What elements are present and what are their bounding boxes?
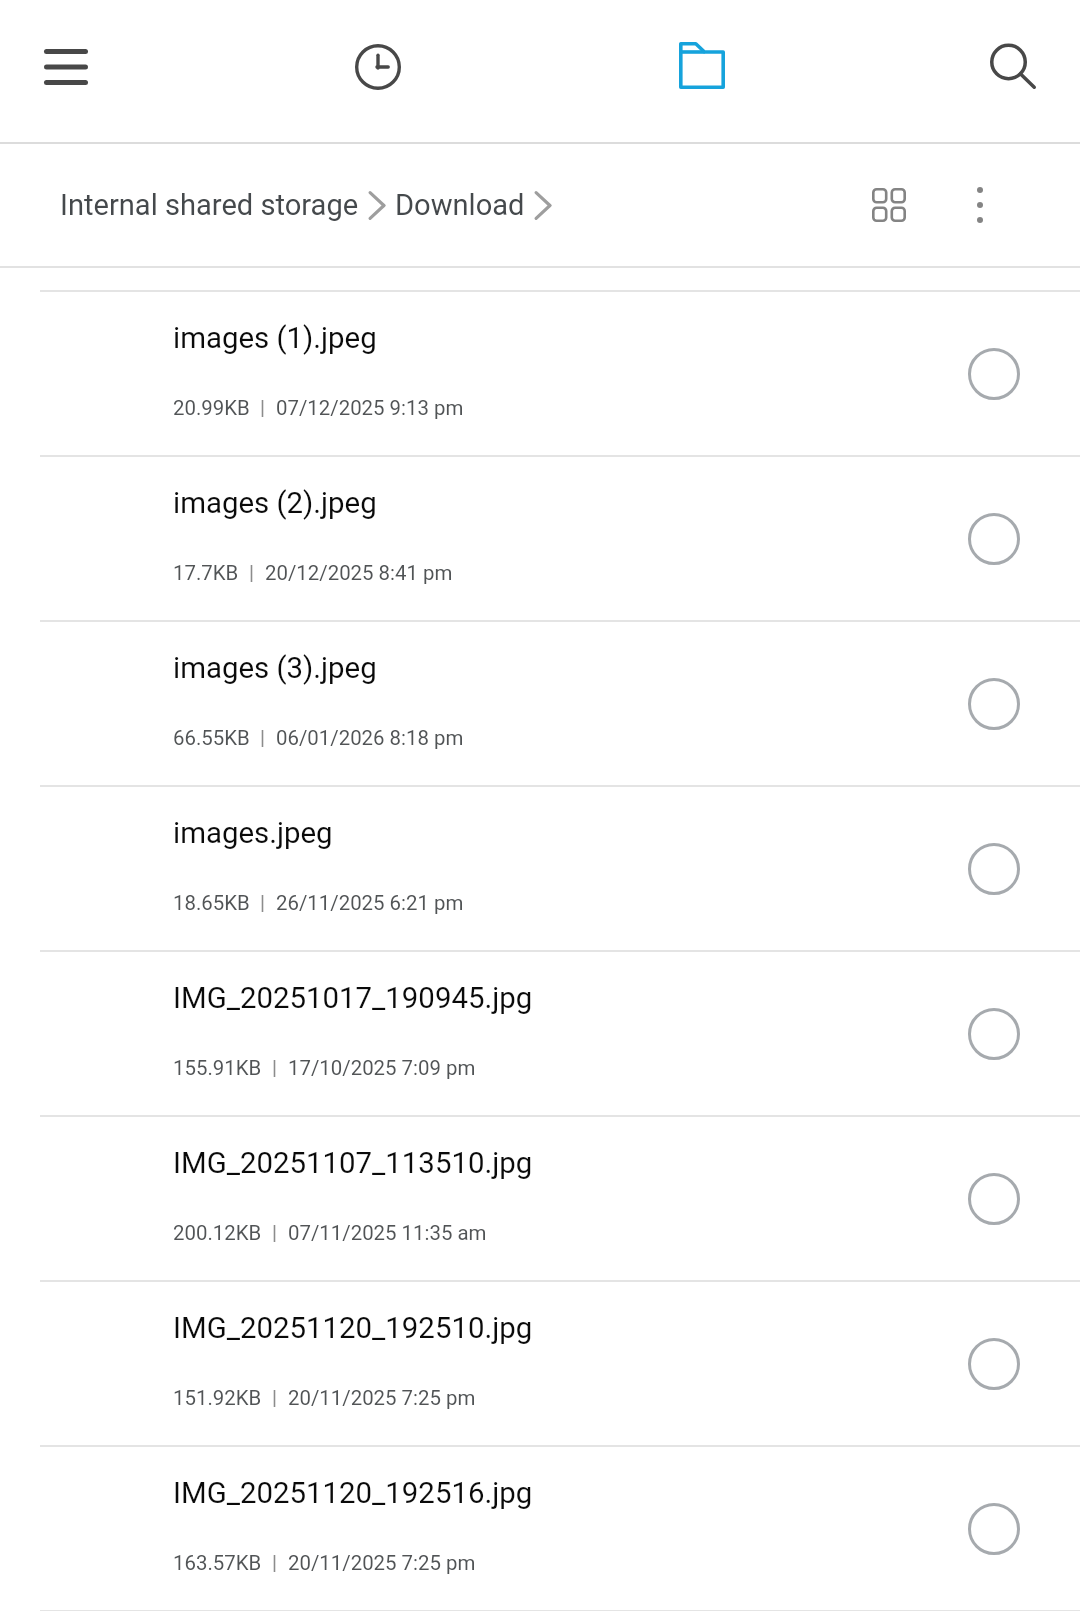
staticText: images.jpeg xyxy=(173,816,333,850)
staticText: 200.12KB xyxy=(173,1221,262,1245)
staticText: 07/12/2025 9:13 pm xyxy=(276,396,464,420)
staticText: IMG_20251017_190945.jpg xyxy=(173,981,533,1015)
staticText: Download xyxy=(395,188,525,222)
button[interactable]: Download xyxy=(395,144,525,266)
staticText: | xyxy=(262,1056,288,1080)
staticText: 20/11/2025 7:25 pm xyxy=(288,1386,476,1410)
staticText: 66.55KB xyxy=(173,726,250,750)
staticText: | xyxy=(262,1386,288,1410)
staticText: | xyxy=(262,1551,288,1575)
staticText: | xyxy=(250,726,276,750)
staticText: 06/01/2026 8:18 pm xyxy=(276,726,464,750)
staticText: 155.91KB xyxy=(173,1056,262,1080)
staticText: | xyxy=(262,1221,288,1245)
button[interactable]: Select IMG_20251017_190945.jpg xyxy=(940,952,1048,1115)
staticText: 17/10/2025 7:09 pm xyxy=(288,1056,476,1080)
button[interactable]: Grid view xyxy=(823,144,955,266)
button[interactable]: IMG_20251107_113510.jpg xyxy=(0,1115,1080,1280)
staticText: | xyxy=(239,561,265,585)
staticText: 26/11/2025 6:21 pm xyxy=(276,891,464,915)
button[interactable]: Menu xyxy=(0,0,138,138)
button[interactable]: More options xyxy=(914,144,1046,266)
button[interactable]: IMG_20251017_190945.jpg xyxy=(0,950,1080,1115)
staticText: | xyxy=(250,891,276,915)
staticText: 18.65KB xyxy=(173,891,250,915)
staticText: IMG_20251120_192510.jpg xyxy=(173,1311,533,1345)
button[interactable]: Select IMG_20251120_192510.jpg xyxy=(940,1282,1048,1445)
button[interactable]: images.jpeg xyxy=(0,785,1080,950)
staticText: 163.57KB xyxy=(173,1551,262,1575)
button[interactable]: Select images (1).jpeg xyxy=(940,292,1048,455)
staticText: images (1).jpeg xyxy=(173,321,377,355)
button[interactable]: Recent xyxy=(306,0,450,138)
button[interactable]: Select IMG_20251107_113510.jpg xyxy=(940,1117,1048,1280)
button[interactable]: Select images (3).jpeg xyxy=(940,622,1048,785)
button[interactable]: Select IMG_20251120_192516.jpg xyxy=(940,1447,1048,1610)
staticText: 07/11/2025 11:35 am xyxy=(288,1221,487,1245)
staticText: 20.99KB xyxy=(173,396,250,420)
staticText: 151.92KB xyxy=(173,1386,262,1410)
button[interactable]: Select images.jpeg xyxy=(940,787,1048,950)
staticText: IMG_20251107_113510.jpg xyxy=(173,1146,533,1180)
button[interactable]: images (3).jpeg xyxy=(0,620,1080,785)
button[interactable]: IMG_20251120_192510.jpg xyxy=(0,1280,1080,1445)
button[interactable]: images (1).jpeg xyxy=(0,290,1080,455)
staticText: 20/12/2025 8:41 pm xyxy=(265,561,453,585)
staticText: images (2).jpeg xyxy=(173,486,377,520)
button[interactable]: images (2).jpeg xyxy=(0,455,1080,620)
staticText: IMG_20251120_192516.jpg xyxy=(173,1476,533,1510)
button[interactable]: IMG_20251120_192516.jpg xyxy=(0,1445,1080,1610)
staticText: 17.7KB xyxy=(173,561,239,585)
button[interactable]: Search xyxy=(941,0,1080,137)
staticText: 20/11/2025 7:25 pm xyxy=(288,1551,476,1575)
button[interactable]: Select images (2).jpeg xyxy=(940,457,1048,620)
staticText: | xyxy=(250,396,276,420)
button[interactable]: Internal shared storage xyxy=(60,144,359,266)
staticText: Internal shared storage xyxy=(60,188,359,222)
button[interactable]: Files xyxy=(630,0,774,136)
staticText: images (3).jpeg xyxy=(173,651,377,685)
